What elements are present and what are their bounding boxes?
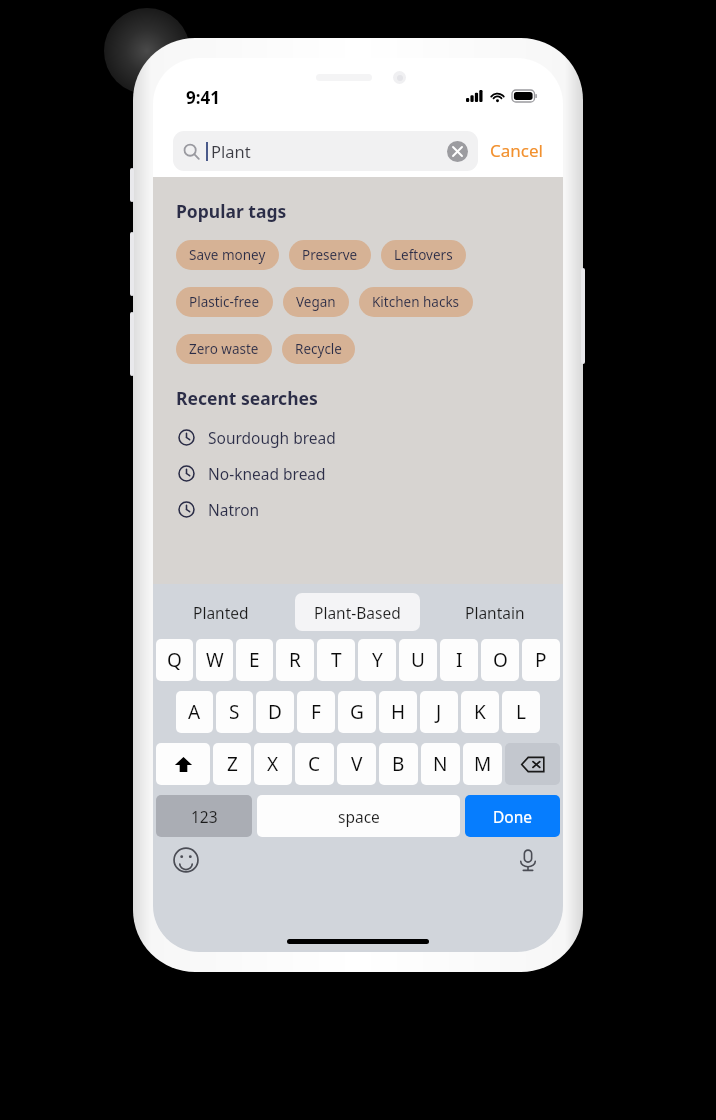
staticText: Save money [189,246,266,264]
staticText: M [474,751,492,777]
staticText: Z [227,751,238,777]
staticText: O [493,647,508,673]
button[interactable]: Dictate [515,847,541,873]
staticText: Plant-Based [314,602,401,623]
button[interactable]: Q [156,639,193,681]
staticText: E [249,647,260,673]
button[interactable]: Kitchen hacks [359,287,473,317]
staticText: V [351,751,363,777]
staticText: Zero waste [189,340,259,358]
staticText: Recycle [295,340,342,358]
staticText: Done [493,806,533,827]
button[interactable]: U [399,639,437,681]
staticText: Plantain [465,602,525,623]
button[interactable]: F [297,691,335,733]
button[interactable]: T [317,639,355,681]
staticText: K [474,699,486,725]
staticText: Preserve [302,246,358,264]
button[interactable]: P [522,639,560,681]
staticText: N [433,751,448,777]
staticText: W [206,647,224,673]
staticText: 123 [191,806,218,827]
button[interactable]: Clear text [447,141,468,162]
button[interactable]: Zero waste [176,334,272,364]
button[interactable]: Z [213,743,251,785]
button[interactable]: V [337,743,376,785]
staticText: T [331,647,342,673]
button[interactable]: Preserve [289,240,371,270]
staticText: U [411,647,425,673]
button[interactable]: W [196,639,233,681]
button[interactable]: Plant [173,131,478,171]
staticText: Sourdough bread [208,427,336,448]
staticText: Natron [208,499,260,520]
staticText: D [268,699,282,725]
button[interactable]: L [502,691,540,733]
staticText: Kitchen hacks [372,293,460,311]
button[interactable]: K [461,691,499,733]
button[interactable]: Planted [159,593,283,631]
staticText: 9:41 [186,86,220,109]
button[interactable]: Cancel [478,133,545,168]
staticText: Leftovers [394,246,453,264]
button[interactable]: M [463,743,502,785]
button[interactable]: Leftovers [381,240,466,270]
staticText: R [289,647,301,673]
button[interactable]: X [254,743,292,785]
button[interactable]: space [257,795,460,837]
staticText: No-knead bread [208,463,326,484]
button[interactable]: H [379,691,417,733]
staticText: F [311,699,321,725]
staticText: Popular tags [176,199,287,223]
button[interactable]: E [236,639,273,681]
button[interactable]: No-knead bread [176,455,545,491]
staticText: Planted [193,602,249,623]
button[interactable]: B [379,743,418,785]
button[interactable]: Plastic-free [176,287,273,317]
staticText: Q [167,647,182,673]
button[interactable]: 123 [156,795,252,837]
button[interactable]: A [176,691,213,733]
staticText: P [535,647,547,673]
staticText: Plastic-free [189,293,260,311]
button[interactable]: C [295,743,334,785]
staticText: J [436,699,442,725]
button[interactable]: Plantain [432,593,557,631]
button[interactable]: R [276,639,314,681]
button[interactable]: Backspace [505,743,560,785]
button[interactable]: Emoji [173,847,199,873]
button[interactable]: G [338,691,376,733]
staticText: Y [372,647,383,673]
button[interactable]: I [440,639,478,681]
staticText: X [267,751,279,777]
button[interactable]: Shift [156,743,210,785]
button[interactable]: Save money [176,240,279,270]
staticText: Recent searches [176,386,318,410]
button[interactable]: Natron [176,491,545,527]
staticText: C [308,751,321,777]
button[interactable]: Done [465,795,560,837]
button[interactable]: Y [358,639,396,681]
button[interactable]: Sourdough bread [176,419,545,455]
staticText: B [392,751,405,777]
button[interactable]: Recycle [282,334,355,364]
button[interactable]: J [420,691,458,733]
button[interactable]: S [216,691,253,733]
staticText: A [188,699,201,725]
button[interactable]: Plant-Based [295,593,420,631]
staticText: Cancel [490,139,543,162]
button[interactable]: Vegan [283,287,349,317]
staticText: I [456,647,463,673]
staticText: Vegan [296,293,336,311]
staticText: Plant [211,140,251,162]
button[interactable]: O [481,639,519,681]
button[interactable]: D [256,691,294,733]
button[interactable]: N [421,743,460,785]
staticText: H [391,699,406,725]
staticText: L [516,699,526,725]
staticText: G [350,699,364,725]
staticText: S [229,699,240,725]
staticText: space [338,806,380,827]
